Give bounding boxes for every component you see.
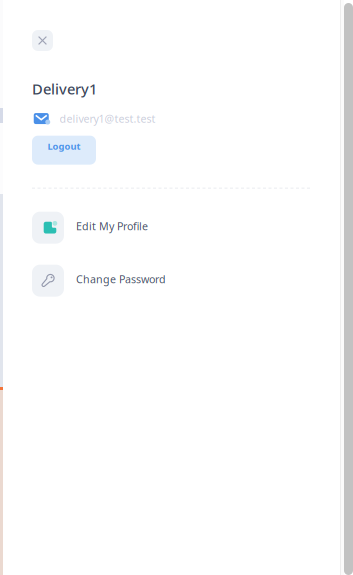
staticText: Change Password [76,272,166,286]
staticText: Logout [47,140,80,152]
staticText: Edit My Profile [76,219,148,233]
staticText: delivery1@test.test [59,111,155,126]
button[interactable]: Edit My Profile [32,212,310,244]
staticText: Delivery1 [32,79,97,98]
button[interactable]: Change Password [32,265,310,297]
button[interactable]: Logout [32,136,96,165]
button[interactable]: Close [32,30,53,51]
